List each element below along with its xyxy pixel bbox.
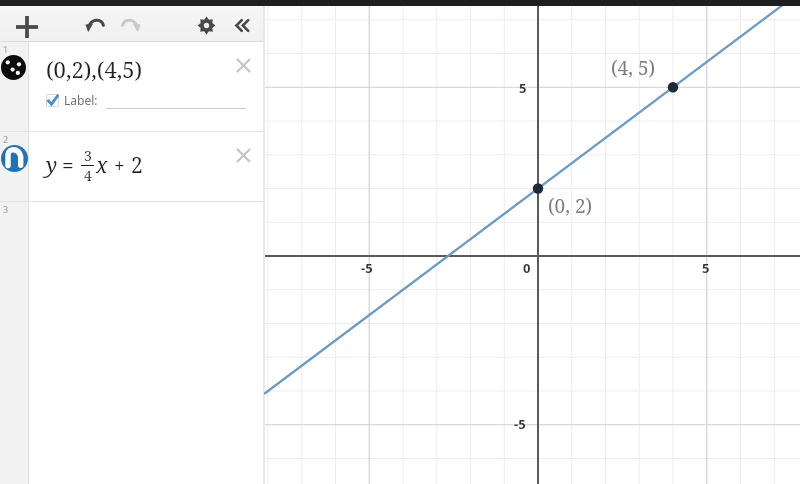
button[interactable]: Add expression [6, 6, 48, 48]
staticText: 5 [519, 79, 527, 97]
button[interactable]: Collapse panel [223, 6, 261, 44]
staticText: (0, 2) [548, 193, 593, 219]
button[interactable]: Undo [76, 6, 114, 44]
staticText: = [62, 151, 74, 180]
staticText: 5 [702, 259, 710, 277]
button[interactable]: 5 [265, 0, 800, 484]
button[interactable]: 2 [0, 132, 263, 201]
staticText: -5 [514, 415, 526, 433]
button[interactable]: Redo [112, 6, 150, 44]
staticText: 2 [3, 133, 9, 145]
button[interactable]: 1 [0, 42, 263, 131]
staticText: 4 [84, 166, 92, 185]
staticText: 3 [84, 146, 92, 165]
staticText: Label: [64, 92, 98, 108]
staticText: (4, 5) [611, 55, 656, 81]
staticText: -5 [361, 259, 373, 277]
staticText: 2 [131, 151, 143, 180]
staticText: y [46, 151, 58, 180]
staticText: x [96, 151, 108, 180]
button[interactable]: Delete expression [232, 144, 254, 166]
button[interactable]: Settings [187, 6, 225, 44]
staticText: 1 [3, 43, 9, 55]
staticText: 3 [3, 203, 9, 215]
staticText: (0,2),(4,5) [46, 54, 143, 84]
button[interactable]: Label: [46, 92, 309, 108]
button[interactable]: 3 [0, 202, 263, 484]
button[interactable]: Delete expression [232, 54, 254, 76]
staticText: 0 [523, 259, 531, 277]
staticText: + [114, 153, 125, 179]
